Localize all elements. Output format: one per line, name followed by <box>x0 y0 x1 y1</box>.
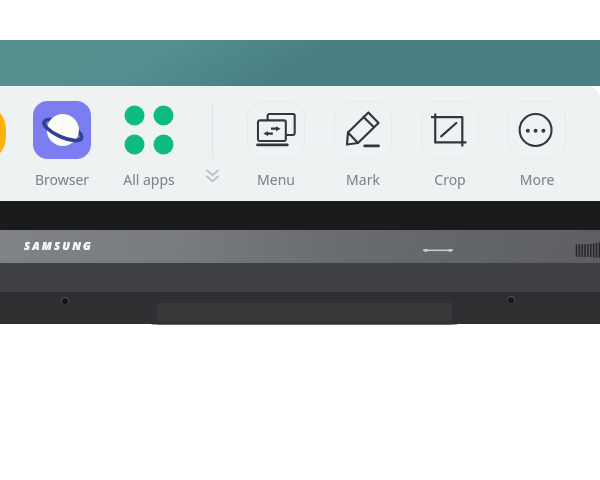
staticText: Browser <box>33 170 91 189</box>
staticText: Menu <box>247 170 305 189</box>
button[interactable]: Expand taskbar <box>200 162 224 186</box>
button[interactable]: Menu <box>247 101 305 189</box>
button[interactable]: Browser <box>33 101 91 189</box>
button[interactable]: Crop <box>421 101 479 189</box>
staticText: Crop <box>421 170 479 189</box>
staticText: Mark <box>334 170 392 189</box>
staticText: All apps <box>120 170 178 189</box>
button[interactable]: Mark <box>334 101 392 189</box>
button[interactable]: All apps <box>120 101 178 189</box>
staticText: SAMSUNG <box>24 238 93 253</box>
button[interactable] <box>0 104 6 162</box>
button[interactable]: More <box>508 101 566 189</box>
staticText: More <box>508 170 566 189</box>
